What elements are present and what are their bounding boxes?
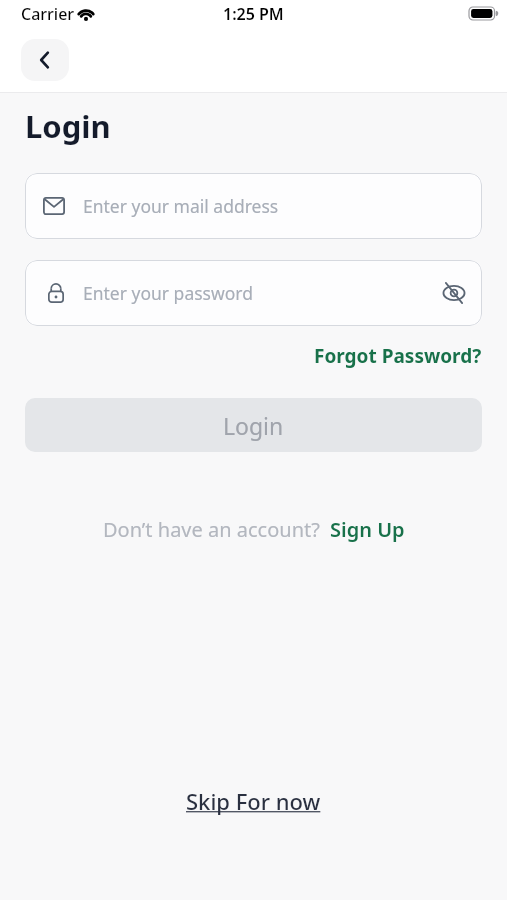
staticText: Don’t have an account?: [103, 516, 320, 543]
staticText: Sign Up: [330, 516, 405, 543]
staticText: Forgot Password?: [314, 343, 482, 369]
button[interactable]: Login: [25, 398, 482, 452]
staticText: Enter your mail address: [83, 194, 279, 218]
staticText: 1:25 PM: [223, 3, 284, 25]
button[interactable]: Sign Up: [330, 516, 405, 543]
staticText: Login: [223, 410, 284, 441]
button[interactable]: [21, 39, 69, 81]
button[interactable]: Forgot Password?: [314, 343, 482, 369]
button[interactable]: [442, 281, 466, 305]
button[interactable]: Enter your password: [25, 260, 482, 326]
staticText: Carrier: [21, 3, 75, 25]
staticText: Login: [25, 105, 111, 147]
staticText: Enter your password: [83, 281, 253, 305]
button[interactable]: Enter your mail address: [25, 173, 482, 239]
button[interactable]: Skip For now: [186, 786, 321, 816]
staticText: Skip For now: [186, 786, 321, 816]
